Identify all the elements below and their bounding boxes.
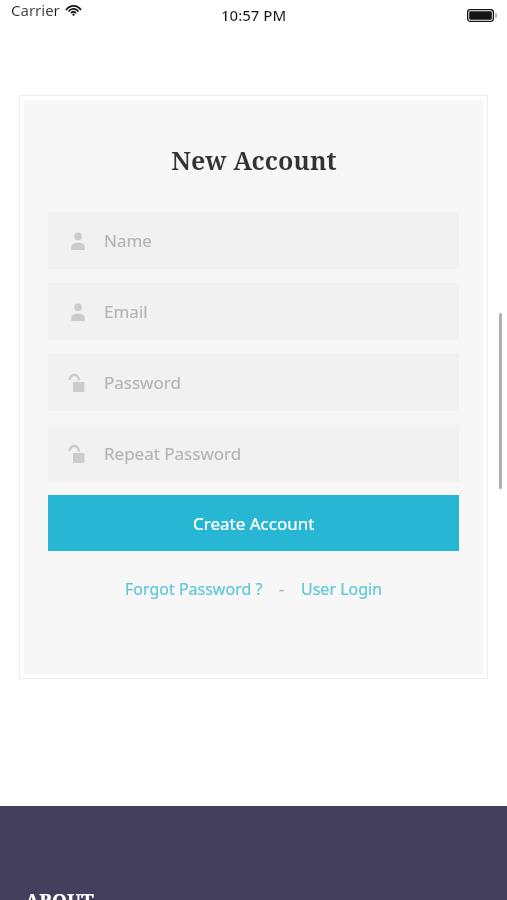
- button[interactable]: Account icon: [48, 283, 459, 340]
- other: Password icon: [69, 445, 87, 463]
- button[interactable]: Password icon: [48, 354, 459, 411]
- staticText: -: [279, 578, 285, 600]
- button[interactable]: Create Account: [48, 495, 459, 551]
- staticText: 10:57 PM: [221, 5, 287, 25]
- staticText: Create Account: [193, 512, 315, 535]
- staticText: New Account: [171, 143, 337, 177]
- staticText: Name: [104, 229, 152, 252]
- other: Account icon: [69, 232, 87, 250]
- staticText: User Login: [301, 578, 383, 600]
- button[interactable]: Forgot Password ?: [125, 578, 263, 600]
- staticText: Forgot Password ?: [125, 578, 263, 600]
- staticText: Carrier: [11, 0, 60, 20]
- other: Account icon: [69, 303, 87, 321]
- staticText: Repeat Password: [104, 442, 242, 465]
- button[interactable]: Account icon: [48, 212, 459, 269]
- button[interactable]: User Login: [301, 578, 383, 600]
- staticText: Password: [104, 371, 181, 394]
- button[interactable]: Password icon: [48, 425, 459, 482]
- staticText: ABOUT: [25, 888, 94, 900]
- staticText: Email: [104, 300, 148, 323]
- other: Password icon: [69, 374, 87, 392]
